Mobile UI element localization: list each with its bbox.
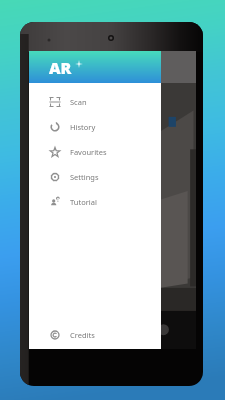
staticText: History (70, 122, 96, 132)
button[interactable]: Scan (29, 89, 161, 114)
staticText: AR (49, 57, 72, 79)
staticText: Tutorial (70, 197, 97, 207)
button[interactable]: Favourites (29, 139, 161, 164)
staticText: Favourites (70, 147, 107, 157)
staticText: Scan (70, 97, 87, 107)
button[interactable]: Credits (29, 322, 161, 347)
staticText: Settings (70, 172, 99, 182)
button[interactable]: History (29, 114, 161, 139)
button[interactable]: AR (29, 51, 161, 83)
staticText: Credits (70, 330, 95, 340)
button[interactable]: Tutorial (29, 189, 161, 214)
button[interactable]: Settings (29, 164, 161, 189)
